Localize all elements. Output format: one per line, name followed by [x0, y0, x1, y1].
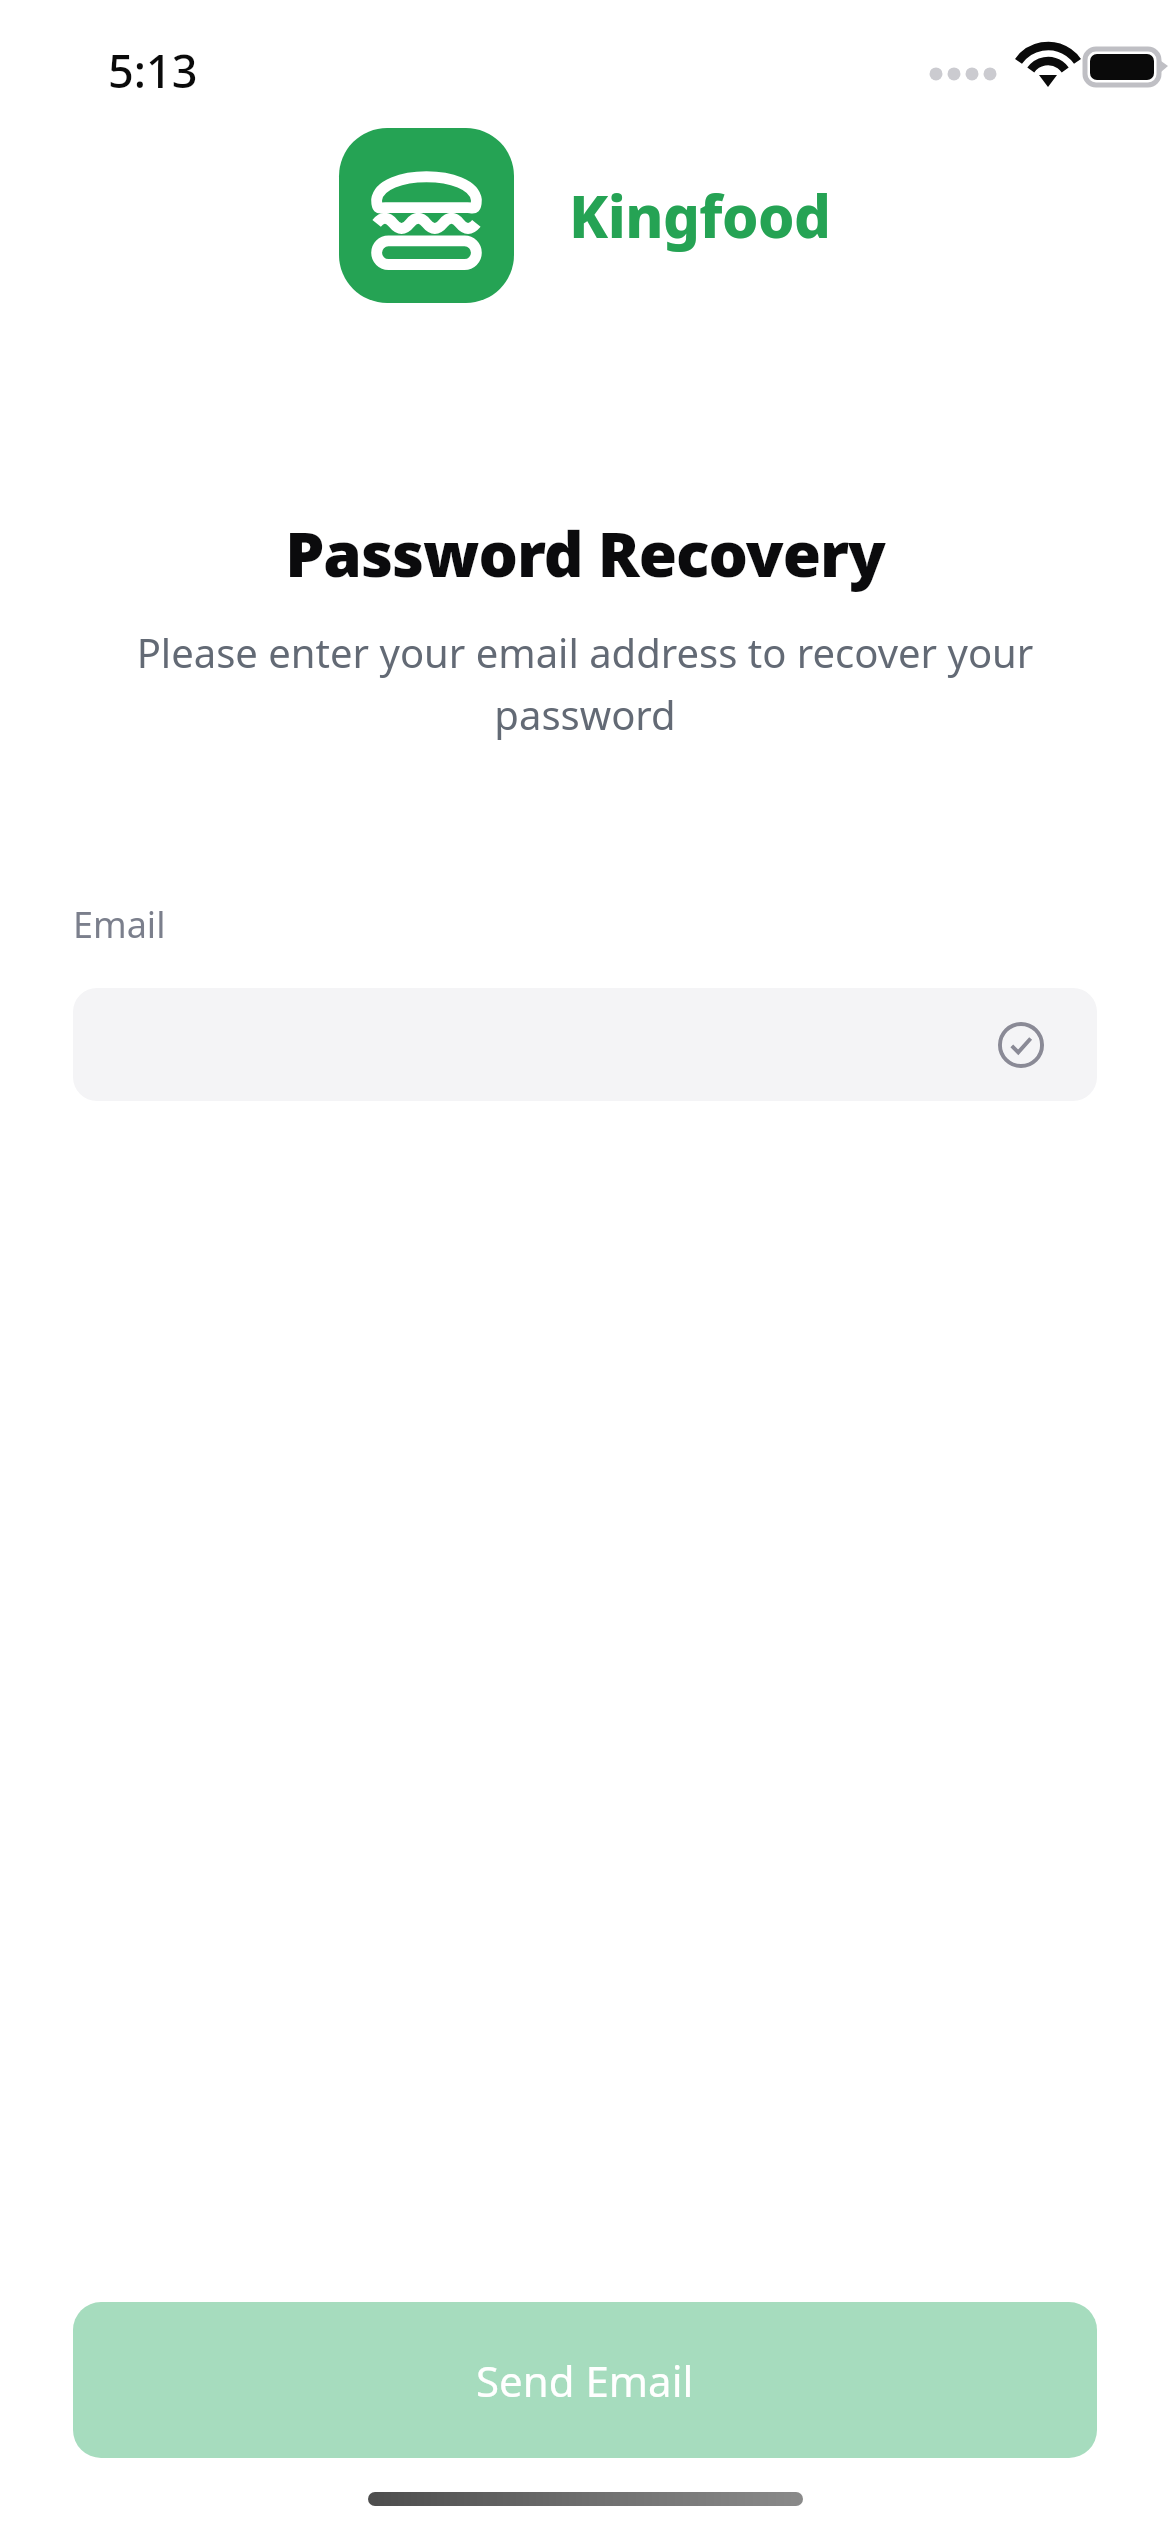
staticText: Please enter your email address to recov… — [85, 625, 1085, 741]
staticText: Email — [73, 900, 166, 949]
staticText: Password Recovery — [285, 511, 885, 595]
staticText: Kingfood — [569, 176, 831, 255]
other: Valid email — [998, 1022, 1044, 1068]
button[interactable]: Send Email — [73, 2302, 1097, 2458]
button[interactable]: Valid email — [73, 988, 1097, 1101]
staticText: Send Email — [476, 2352, 694, 2409]
staticText: 5:13 — [108, 40, 198, 101]
